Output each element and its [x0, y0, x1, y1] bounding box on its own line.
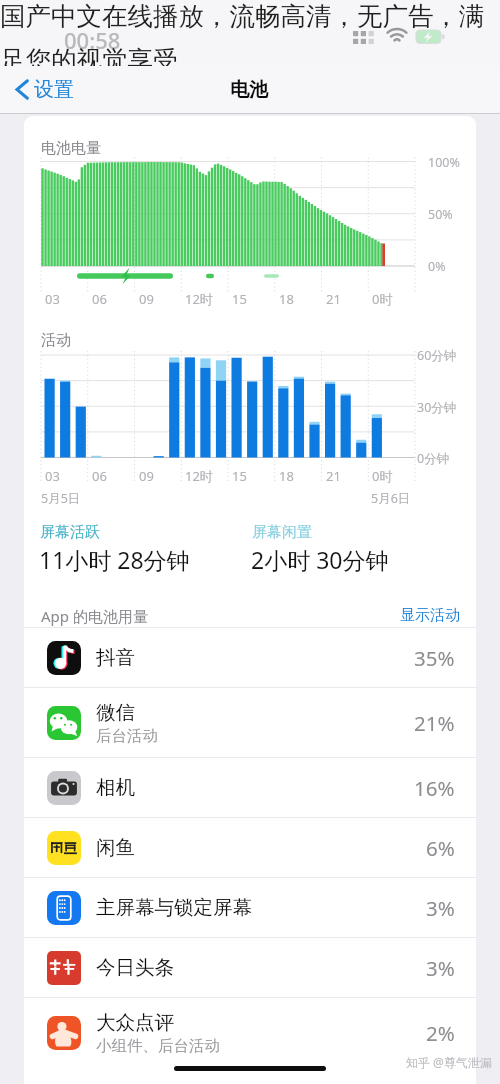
staticText: 60分钟 [417, 347, 457, 364]
button[interactable]: 今日头条 [24, 938, 476, 997]
staticText: 主屏幕与锁定屏幕 [96, 895, 252, 920]
staticText: 09 [139, 290, 154, 308]
staticText: 12时 [185, 467, 213, 485]
button[interactable]: 显示活动 [400, 606, 460, 625]
button[interactable]: 相机 [24, 758, 476, 817]
staticText: 3% [426, 894, 455, 922]
staticText: 50% [428, 206, 453, 223]
staticText: 设置 [34, 77, 74, 102]
staticText: 小组件、后台活动 [96, 1036, 220, 1056]
staticText: 2% [426, 1019, 455, 1047]
button[interactable]: 抖音 [24, 628, 476, 687]
staticText: 闲鱼 [96, 835, 135, 860]
staticText: 2小时 30分钟 [251, 544, 389, 575]
staticText: 21 [326, 290, 341, 308]
staticText: 03 [45, 290, 60, 308]
staticText: 6% [426, 834, 455, 862]
button[interactable]: 大众点评 [24, 998, 476, 1067]
staticText: 0时 [372, 467, 393, 485]
button[interactable]: 微信 [24, 688, 476, 757]
staticText: 0分钟 [417, 450, 450, 467]
staticText: 5月5日 [41, 490, 81, 507]
staticText: 12时 [185, 290, 213, 308]
staticText: 活动 [41, 331, 71, 350]
button[interactable]: 设置 [16, 74, 74, 104]
staticText: 相机 [96, 775, 135, 800]
staticText: 微信 [96, 700, 135, 725]
staticText: 今日头条 [96, 955, 174, 980]
button[interactable]: 主屏幕与锁定屏幕 [24, 878, 476, 937]
staticText: 21 [326, 467, 341, 485]
staticText: 屏幕闲置 [252, 523, 312, 542]
staticText: 电池 [230, 78, 268, 102]
staticText: 16% [414, 774, 455, 802]
staticText: 3% [426, 954, 455, 982]
staticText: 抖音 [96, 645, 135, 670]
staticText: 15 [232, 290, 247, 308]
staticText: 知乎 @尊气泄漏 [406, 1054, 492, 1070]
staticText: 大众点评 [96, 1010, 174, 1035]
staticText: 5月6日 [371, 490, 411, 507]
staticText: 0% [428, 258, 446, 275]
staticText: 0时 [372, 290, 393, 308]
staticText: 09 [139, 467, 154, 485]
staticText: 30分钟 [417, 399, 457, 416]
staticText: 03 [45, 467, 60, 485]
staticText: 100% [428, 154, 460, 171]
staticText: 18 [279, 290, 294, 308]
staticText: 后台活动 [96, 726, 158, 746]
staticText: 35% [414, 644, 455, 672]
staticText: App 的电池用量 [41, 606, 148, 626]
staticText: 00:58 [64, 25, 121, 55]
staticText: 国产中文在线播放，流畅高清，无广告，满足您的视觉享受 [0, 0, 500, 66]
staticText: 电池电量 [41, 139, 101, 158]
staticText: 18 [279, 467, 294, 485]
staticText: 21% [414, 709, 455, 737]
staticText: 11小时 28分钟 [39, 544, 190, 575]
staticText: 15 [232, 467, 247, 485]
staticText: 显示活动 [400, 606, 460, 625]
button[interactable]: 闲鱼 [24, 818, 476, 877]
staticText: 06 [92, 467, 107, 485]
staticText: 屏幕活跃 [40, 523, 100, 542]
staticText: 06 [92, 290, 107, 308]
